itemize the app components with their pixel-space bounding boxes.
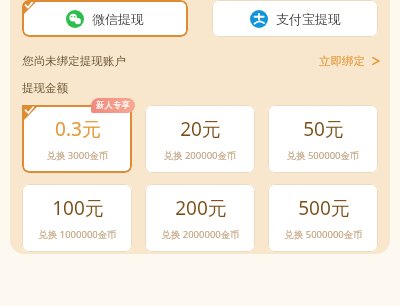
staticText: 20元 (180, 116, 221, 142)
staticText: 支付宝提现 (276, 11, 341, 27)
staticText: 兑换 500000金币 (286, 149, 360, 162)
staticText: 微信提现 (92, 11, 144, 27)
button[interactable]: 50元 (268, 105, 378, 173)
staticText: 兑换 3000金币 (46, 149, 109, 162)
staticText: 兑换 1000000金币 (38, 228, 117, 241)
button[interactable]: 500元 (268, 184, 378, 252)
button[interactable]: 0.3元 (22, 105, 132, 173)
staticText: 0.3元 (55, 116, 101, 142)
staticText: 100元 (52, 195, 104, 221)
staticText: 200元 (175, 195, 227, 221)
button[interactable]: WeChat (22, 0, 188, 37)
staticText: 新人专享 (96, 100, 130, 111)
button[interactable]: Alipay (212, 0, 378, 37)
other: Alipay (250, 10, 268, 28)
button[interactable]: 20元 (145, 105, 255, 173)
staticText: 立即绑定 (319, 54, 365, 68)
staticText: 兑换 200000金币 (163, 149, 237, 162)
staticText: 500元 (298, 195, 350, 221)
button[interactable]: 100元 (22, 184, 132, 252)
staticText: 提现金额 (22, 81, 68, 95)
staticText: 兑换 5000000金币 (284, 228, 363, 241)
other: WeChat (66, 10, 84, 28)
button[interactable]: 立即绑定 (317, 52, 382, 70)
staticText: 您尚未绑定提现账户 (22, 54, 126, 68)
button[interactable]: 200元 (145, 184, 255, 252)
staticText: 50元 (303, 116, 344, 142)
staticText: 兑换 2000000金币 (161, 228, 240, 241)
